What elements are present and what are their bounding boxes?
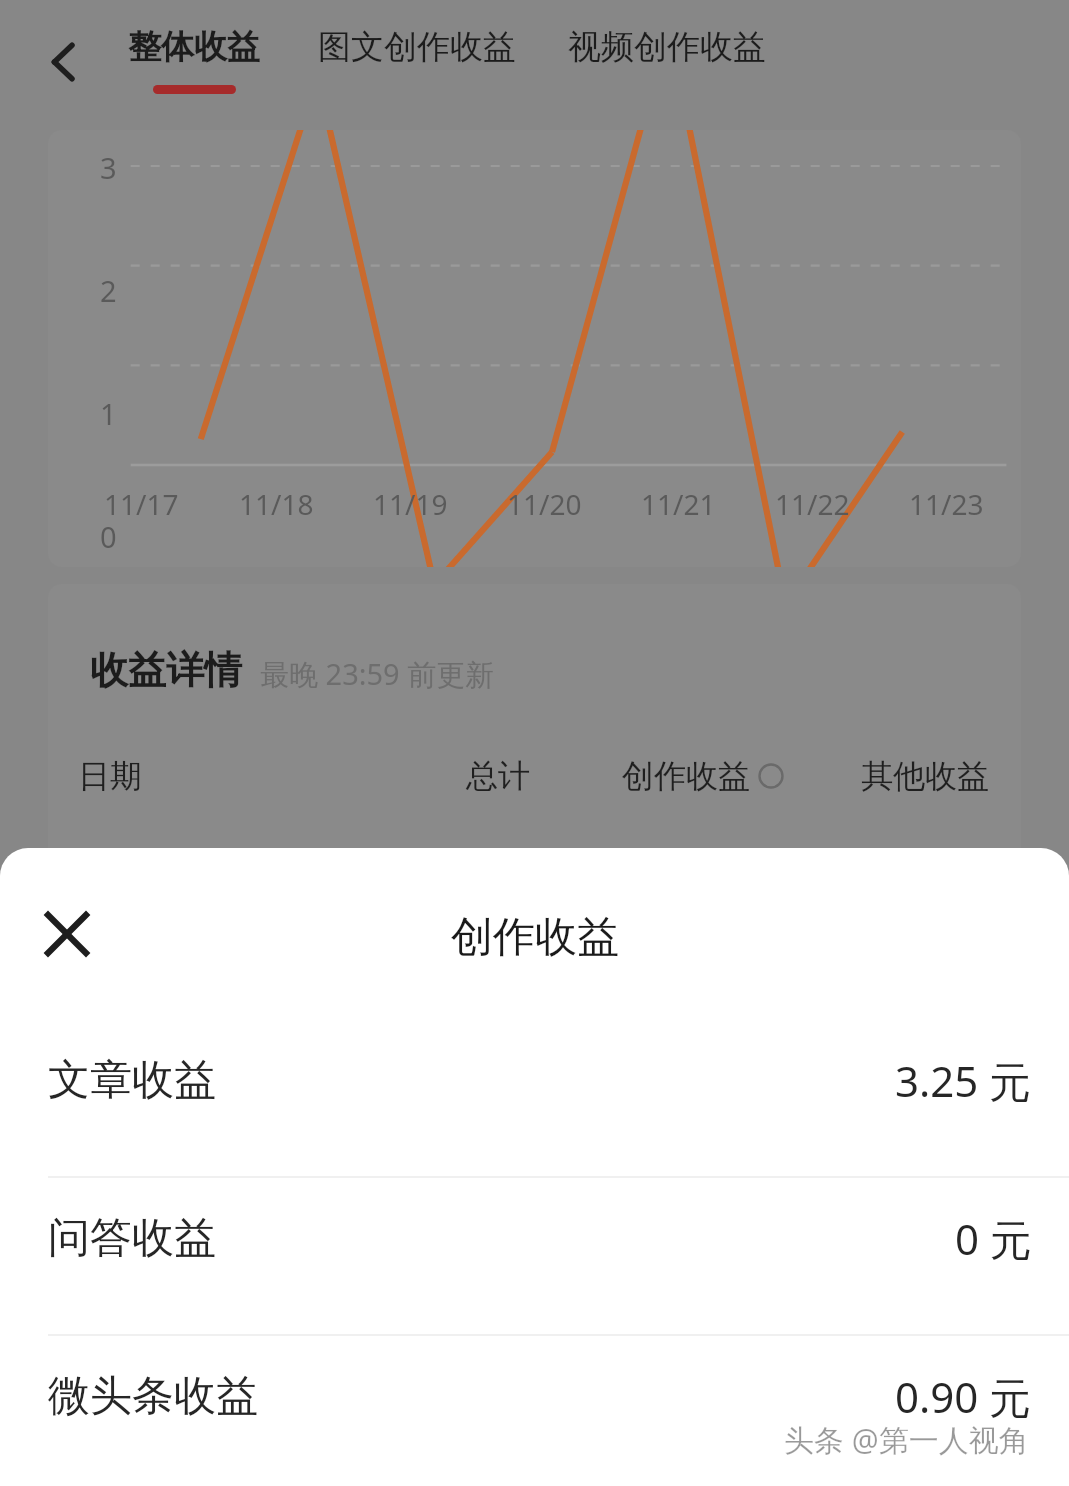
button[interactable]: 问答收益: [0, 1178, 1069, 1336]
staticText: 11/23: [909, 485, 984, 523]
button[interactable]: Back: [26, 24, 102, 100]
staticText: 11/22: [775, 485, 850, 523]
staticText: 0: [100, 517, 117, 556]
staticText: 1: [100, 394, 117, 433]
staticText: 收益详情: [90, 646, 242, 694]
staticText: 整体收益: [128, 26, 260, 68]
staticText: 0 元: [955, 1210, 1032, 1267]
staticText: 11/19: [373, 485, 448, 523]
button[interactable]: Close: [28, 895, 106, 973]
staticText: 创作收益: [451, 911, 619, 964]
staticText: 最晚 23:59 前更新: [260, 654, 495, 694]
staticText: 创作收益: [622, 756, 750, 796]
staticText: 头条 @第一人视角: [784, 1419, 1029, 1460]
staticText: 0.90 元: [895, 1368, 1032, 1425]
button[interactable]: 图文创作收益: [318, 26, 516, 85]
button[interactable]: 文章收益: [0, 1020, 1069, 1178]
staticText: 文章收益: [48, 1054, 216, 1107]
staticText: 视频创作收益: [568, 26, 766, 68]
staticText: 图文创作收益: [318, 26, 516, 68]
staticText: 11/18: [239, 485, 314, 523]
staticText: 其他收益: [861, 756, 989, 796]
staticText: 3: [100, 148, 117, 187]
staticText: 11/21: [641, 485, 716, 523]
staticText: 2: [100, 271, 117, 310]
button[interactable]: 整体收益: [128, 26, 260, 94]
staticText: 11/20: [507, 485, 582, 523]
staticText: 日期: [78, 756, 142, 796]
staticText: 3.25 元: [895, 1052, 1032, 1109]
button[interactable]: 微头条收益: [0, 1336, 1069, 1486]
button[interactable]: 视频创作收益: [568, 26, 766, 85]
staticText: 问答收益: [48, 1212, 216, 1265]
staticText: 总计: [466, 756, 530, 796]
staticText: 11/17: [104, 485, 179, 523]
staticText: 微头条收益: [48, 1370, 258, 1423]
